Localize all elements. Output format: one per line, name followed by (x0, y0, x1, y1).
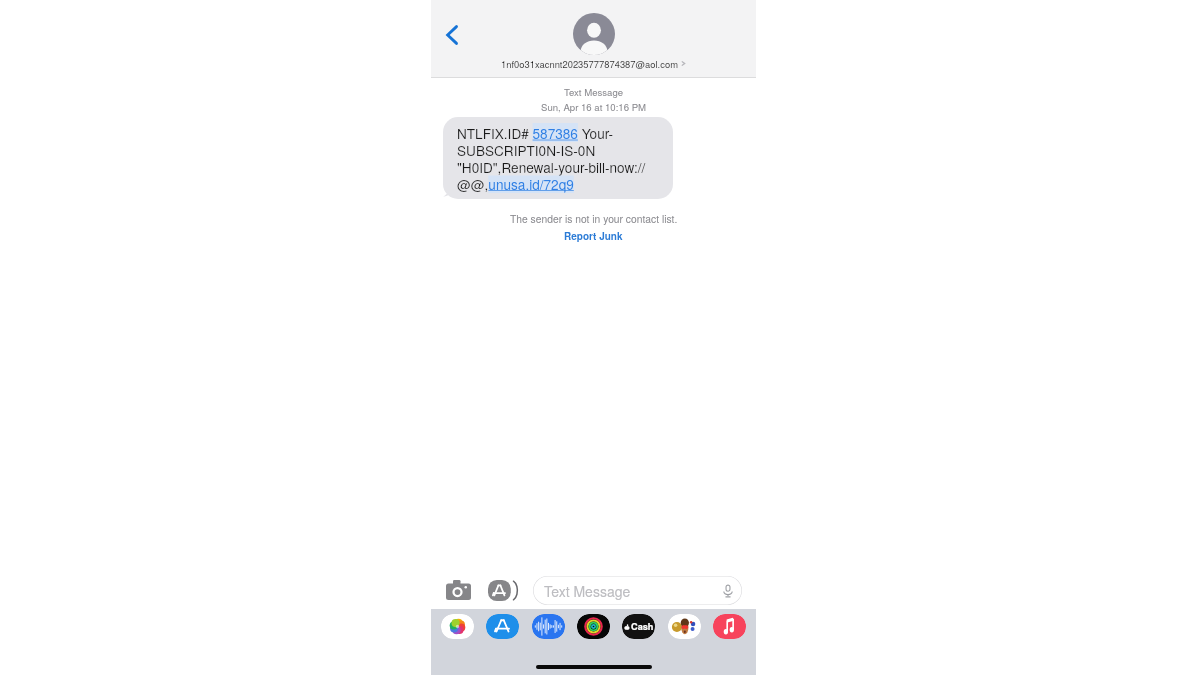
staticText: Cash (631, 620, 654, 633)
staticText: 1nf0o31xacnnt20235777874387@aol.com (501, 57, 678, 70)
button[interactable]: App Store (488, 575, 518, 605)
button[interactable]: Audio Message (532, 614, 565, 639)
button[interactable]: Contact avatar (573, 13, 615, 55)
button[interactable]: NTLFIX.ID# 587386 Your-SUBSCRIPTI0N-IS-0… (443, 117, 673, 199)
button[interactable]: Back (437, 20, 467, 50)
staticText: Report Junk (564, 229, 623, 243)
staticText: Sun, Apr 16 at 10:16 PM (541, 100, 647, 114)
button[interactable]: Camera (445, 577, 471, 603)
staticText: Text Message (564, 85, 624, 99)
button[interactable]: App Store (486, 614, 519, 639)
button[interactable]: Text Message (533, 576, 742, 605)
button[interactable]: Apple Cash (622, 614, 655, 639)
button[interactable]: Fitness (577, 614, 610, 639)
staticText: The sender is not in your contact list. (510, 211, 678, 226)
button[interactable]: Report Junk (558, 228, 629, 244)
button[interactable]: Memoji (668, 614, 701, 639)
other: Dictate (721, 584, 735, 598)
button[interactable]: Photos (441, 614, 474, 639)
staticText: Text Message (544, 581, 631, 601)
button[interactable]: Music (713, 614, 746, 639)
staticText: NTLFIX.ID# 587386 Your-SUBSCRIPTI0N-IS-0… (457, 123, 663, 193)
